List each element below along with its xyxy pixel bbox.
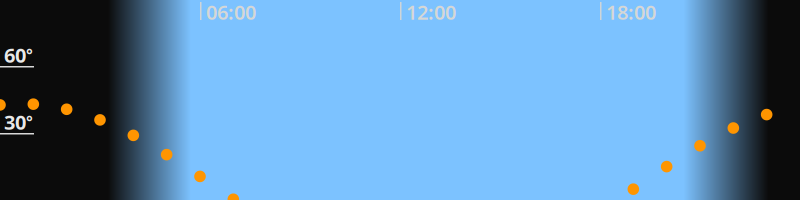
staticText: °	[26, 110, 33, 132]
staticText: °	[26, 43, 33, 65]
staticText: 60	[4, 42, 26, 68]
staticText: 06:00	[206, 0, 256, 25]
staticText: 30	[4, 109, 26, 135]
staticText: 18:00	[606, 0, 656, 25]
staticText: 12:00	[406, 0, 456, 25]
button[interactable]: 24-hour temperature chart	[0, 0, 800, 200]
